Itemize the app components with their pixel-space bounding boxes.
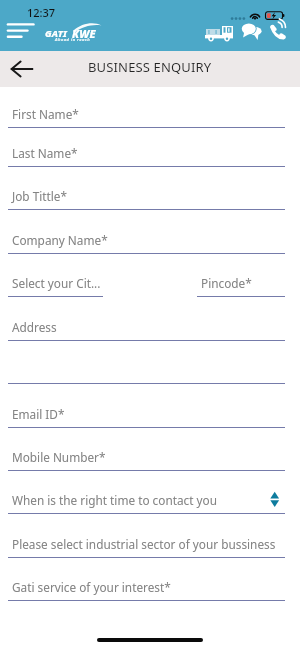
button[interactable]: Back xyxy=(0,51,44,87)
button[interactable]: Select your Cit... xyxy=(8,268,103,296)
button[interactable]: Last Name* xyxy=(8,138,285,166)
staticText: Job Tittle* xyxy=(12,188,67,204)
staticText: Ahead in reach xyxy=(55,37,91,42)
button[interactable]: Address xyxy=(8,312,285,340)
button[interactable]: Email ID* xyxy=(8,399,285,427)
button[interactable]: Pincode* xyxy=(197,268,285,296)
button[interactable]: First Name* xyxy=(8,99,285,127)
staticText: Select your Cit... xyxy=(12,275,101,291)
staticText: Mobile Number* xyxy=(12,449,106,465)
button[interactable]: Company Name* xyxy=(8,225,285,253)
staticText: GATI xyxy=(45,27,68,40)
button[interactable]: Track shipment xyxy=(203,24,235,42)
button[interactable]: When is the right time to contact you xyxy=(8,485,285,513)
staticText: Company Name* xyxy=(12,232,108,248)
staticText: Address xyxy=(12,319,57,335)
staticText: Gati service of your interest* xyxy=(12,579,171,595)
staticText: Last Name* xyxy=(12,145,78,161)
staticText: Pincode* xyxy=(201,275,252,291)
staticText: KWE xyxy=(72,26,96,41)
button[interactable]: Gati service of your interest* xyxy=(8,572,285,600)
button[interactable]: Please select industrial sector of your … xyxy=(8,529,285,557)
button[interactable]: Chat xyxy=(240,22,262,40)
staticText: BUSINESS ENQUIRY xyxy=(88,58,212,76)
staticText: Please select industrial sector of your … xyxy=(12,536,276,552)
staticText: 12:37 xyxy=(27,5,56,20)
button[interactable]: Mobile Number* xyxy=(8,442,285,470)
staticText: When is the right time to contact you xyxy=(12,492,218,508)
button[interactable]: Call xyxy=(267,22,288,41)
button[interactable]: Select time to contact xyxy=(264,490,286,512)
button[interactable]: Menu xyxy=(0,22,42,40)
staticText: First Name* xyxy=(12,106,79,122)
button[interactable]: Job Tittle* xyxy=(8,181,285,209)
staticText: Email ID* xyxy=(12,406,65,422)
